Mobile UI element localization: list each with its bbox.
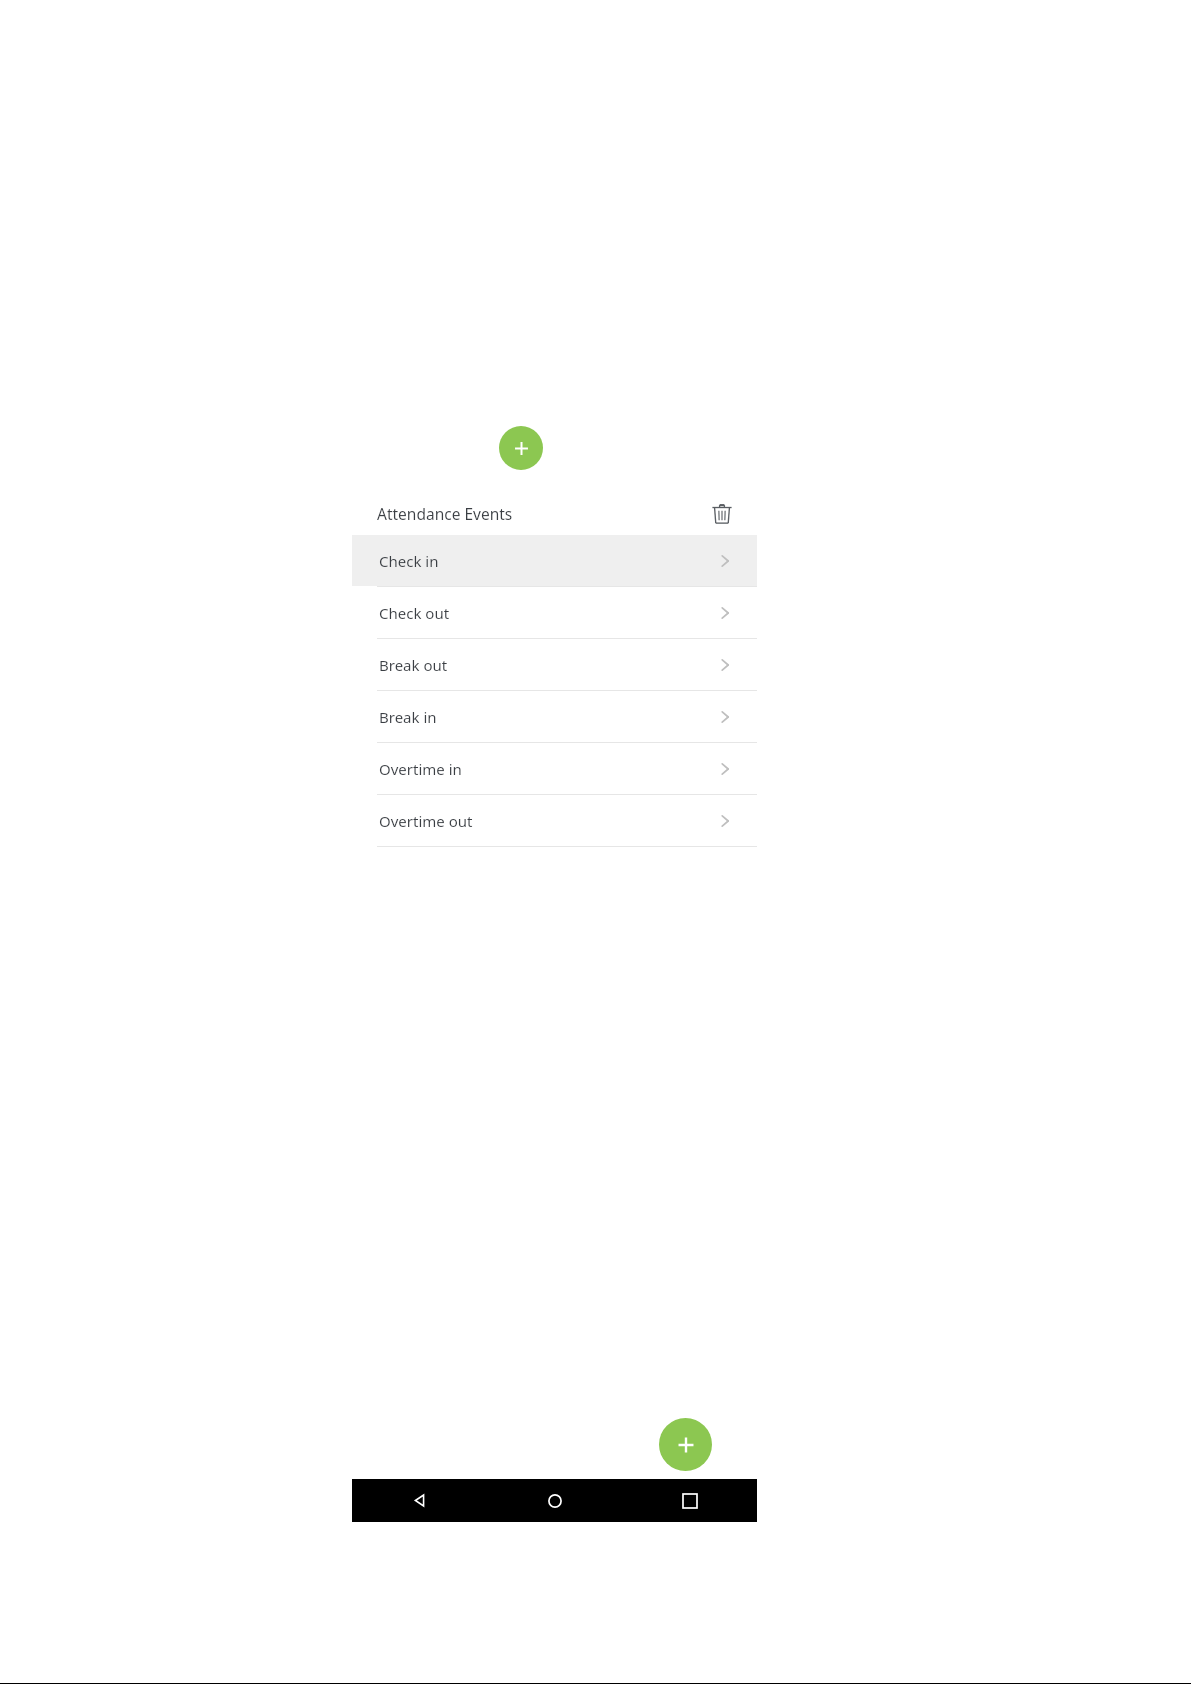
button[interactable]: Add — [659, 1418, 712, 1471]
staticText: Break in — [379, 707, 437, 727]
staticText: Overtime in — [379, 759, 462, 779]
staticText: Break out — [379, 655, 448, 675]
staticText: Check out — [379, 603, 450, 623]
staticText: Overtime out — [379, 811, 473, 831]
button[interactable]: Overtime out — [352, 795, 757, 846]
button[interactable]: Delete — [707, 499, 737, 529]
button[interactable]: Break in — [352, 691, 757, 742]
button[interactable]: Back — [352, 1479, 487, 1522]
staticText: Attendance Events — [377, 503, 513, 524]
button[interactable]: Add event — [499, 426, 543, 470]
button[interactable]: Check out — [352, 587, 757, 638]
button[interactable]: Break out — [352, 639, 757, 690]
button[interactable]: Overtime in — [352, 743, 757, 794]
button[interactable]: Home — [487, 1479, 622, 1522]
button[interactable]: Check in — [352, 535, 757, 586]
button[interactable]: Recents — [622, 1479, 757, 1522]
staticText: Check in — [379, 551, 439, 571]
